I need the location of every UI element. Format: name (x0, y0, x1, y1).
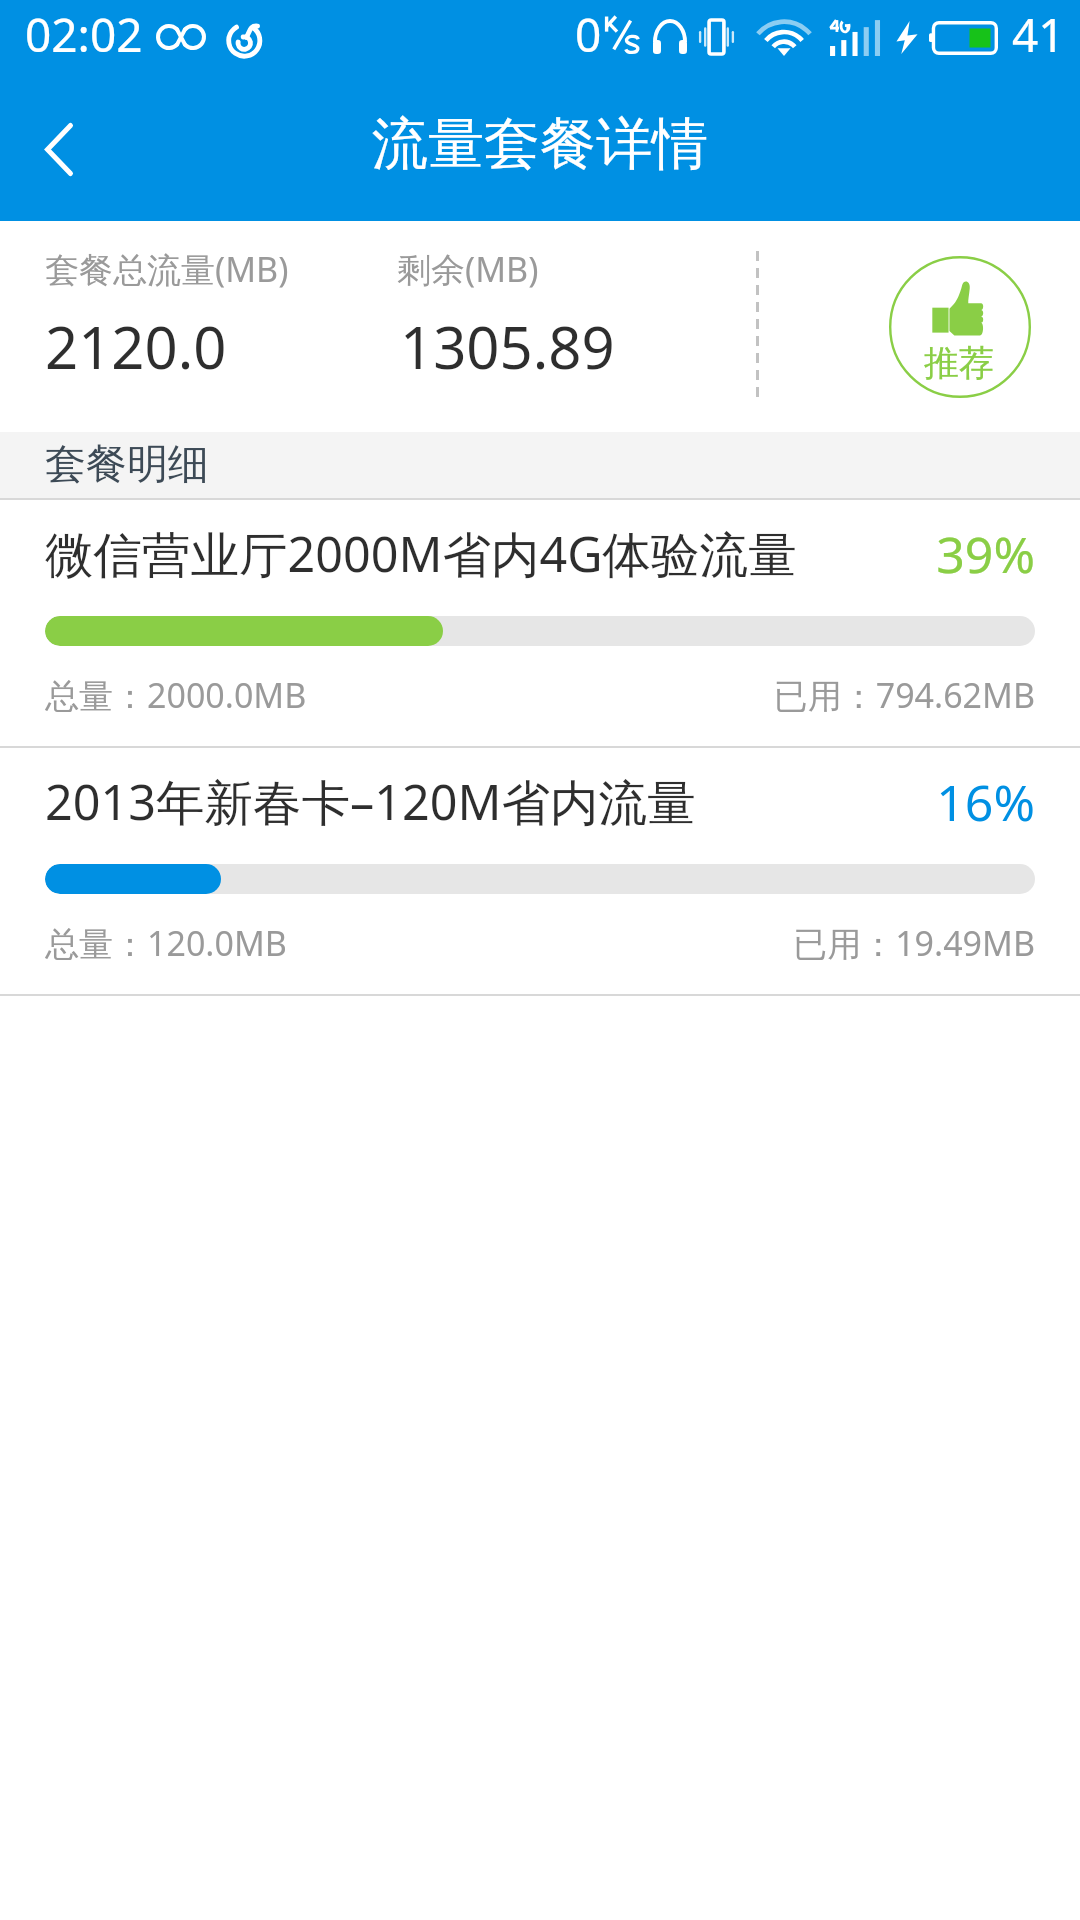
staticText: 套餐明细 (45, 439, 209, 491)
staticText: 2120.0 (45, 307, 227, 386)
staticText: 套餐总流量(MB) (45, 246, 289, 292)
staticText: 微信营业厅2000M省内4G体验流量 (45, 520, 797, 586)
staticText: 1305.89 (400, 307, 615, 386)
button[interactable]: 微信营业厅2000M省内4G体验流量 (0, 500, 1080, 746)
staticText: 推荐 (924, 341, 994, 385)
staticText: 已用：19.49MB (45, 920, 1035, 966)
staticText: 39% (45, 520, 1035, 588)
staticText: 2013年新春卡–120M省内流量 (45, 768, 696, 834)
button[interactable]: 2013年新春卡–120M省内流量 (0, 748, 1080, 994)
staticText: 16% (45, 768, 1035, 836)
button[interactable]: 推荐 Recommend (889, 256, 1031, 398)
staticText: 02:02 (25, 3, 143, 66)
button[interactable]: Back (0, 88, 116, 221)
staticText: 流量套餐详情 (372, 109, 708, 180)
staticText: 41 (1012, 3, 1065, 66)
staticText: 已用：794.62MB (45, 672, 1035, 718)
staticText: 总量：2000.0MB (45, 672, 307, 718)
staticText: 总量：120.0MB (45, 920, 287, 966)
staticText: 剩余(MB) (397, 246, 539, 292)
staticText: 0 (575, 3, 602, 66)
